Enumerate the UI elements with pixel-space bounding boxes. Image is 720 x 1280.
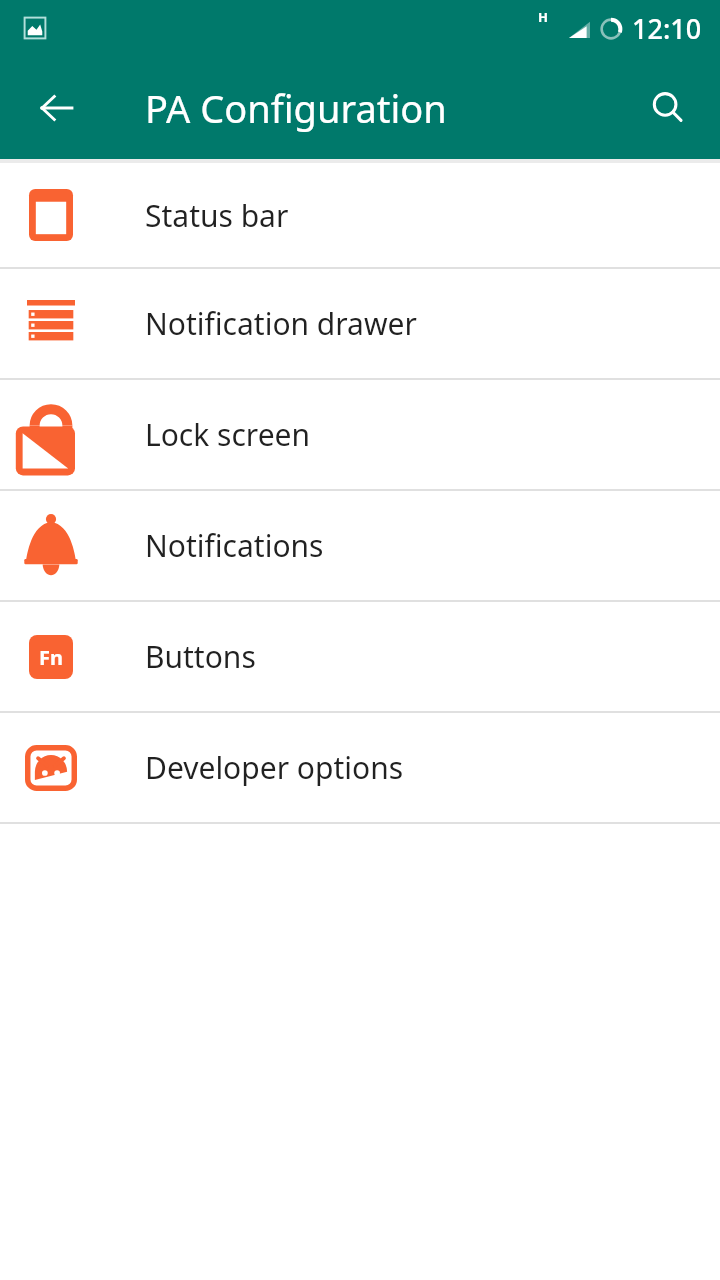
button[interactable]: Back: [26, 77, 88, 139]
staticText: Notifications: [145, 525, 324, 566]
button[interactable]: Notifications: [0, 491, 720, 600]
staticText: Developer options: [145, 747, 404, 788]
button[interactable]: Developer options: [0, 713, 720, 822]
staticText: Status bar: [145, 195, 289, 236]
staticText: Notification drawer: [145, 303, 417, 344]
button[interactable]: Search: [637, 77, 699, 139]
staticText: PA Configuration: [145, 82, 447, 134]
button[interactable]: Lock screen: [0, 380, 720, 489]
staticText: 12:10: [632, 10, 702, 47]
staticText: Fn: [39, 644, 63, 671]
staticText: Lock screen: [145, 414, 311, 455]
button[interactable]: Fn: [0, 602, 720, 711]
staticText: H: [538, 8, 548, 26]
button[interactable]: Notification drawer: [0, 269, 720, 378]
staticText: Buttons: [145, 636, 256, 677]
button[interactable]: Status bar: [0, 163, 720, 267]
